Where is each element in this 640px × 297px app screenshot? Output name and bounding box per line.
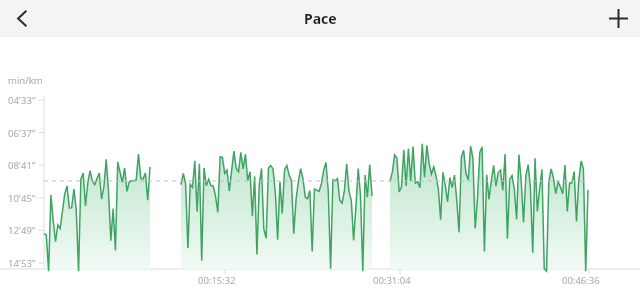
staticText: 10'45" <box>8 192 36 205</box>
staticText: 00:46:36 <box>562 274 600 287</box>
staticText: 00:31:04 <box>373 274 411 287</box>
button[interactable]: Add <box>596 0 640 37</box>
staticText: 08'41" <box>8 159 36 172</box>
staticText: 04'33" <box>8 94 36 107</box>
staticText: 14'53" <box>8 257 36 270</box>
staticText: Pace <box>304 9 337 28</box>
staticText: 12'49" <box>8 224 36 237</box>
button[interactable]: Back <box>0 0 44 37</box>
staticText: min/km <box>8 74 43 87</box>
staticText: 06'37" <box>8 127 36 140</box>
staticText: 00:15:32 <box>198 274 236 287</box>
